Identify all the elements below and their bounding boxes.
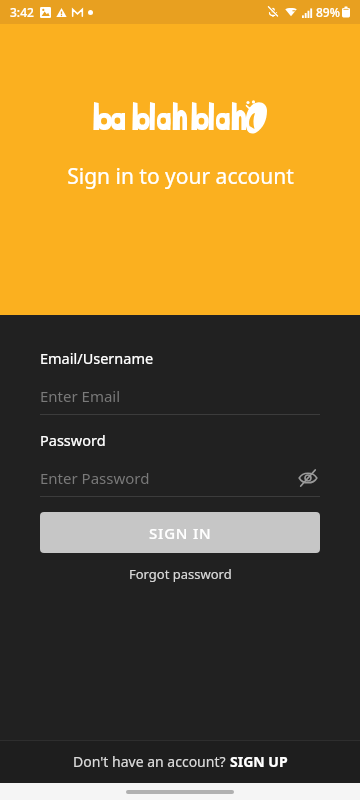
staticText: 89% (316, 4, 340, 20)
button[interactable]: Show password (296, 466, 320, 490)
staticText: Enter Password (40, 468, 296, 488)
staticText: Enter Email (40, 386, 121, 406)
staticText: Sign in to your account (67, 162, 294, 191)
staticText: Email/Username (40, 348, 154, 368)
staticText: SIGN IN (149, 523, 212, 543)
button[interactable]: Enter Password (40, 465, 320, 491)
staticText: Forgot password (129, 565, 232, 583)
staticText: SIGN UP (230, 752, 288, 771)
staticText: Password (40, 430, 106, 450)
staticText: 3:42 (10, 4, 34, 20)
button[interactable]: SIGN IN (40, 512, 320, 553)
button[interactable]: Forgot password (121, 562, 240, 586)
button[interactable]: Enter Email (40, 383, 320, 409)
button[interactable]: Don't have an account? (0, 740, 360, 783)
staticText: Don't have an account? (73, 752, 230, 771)
